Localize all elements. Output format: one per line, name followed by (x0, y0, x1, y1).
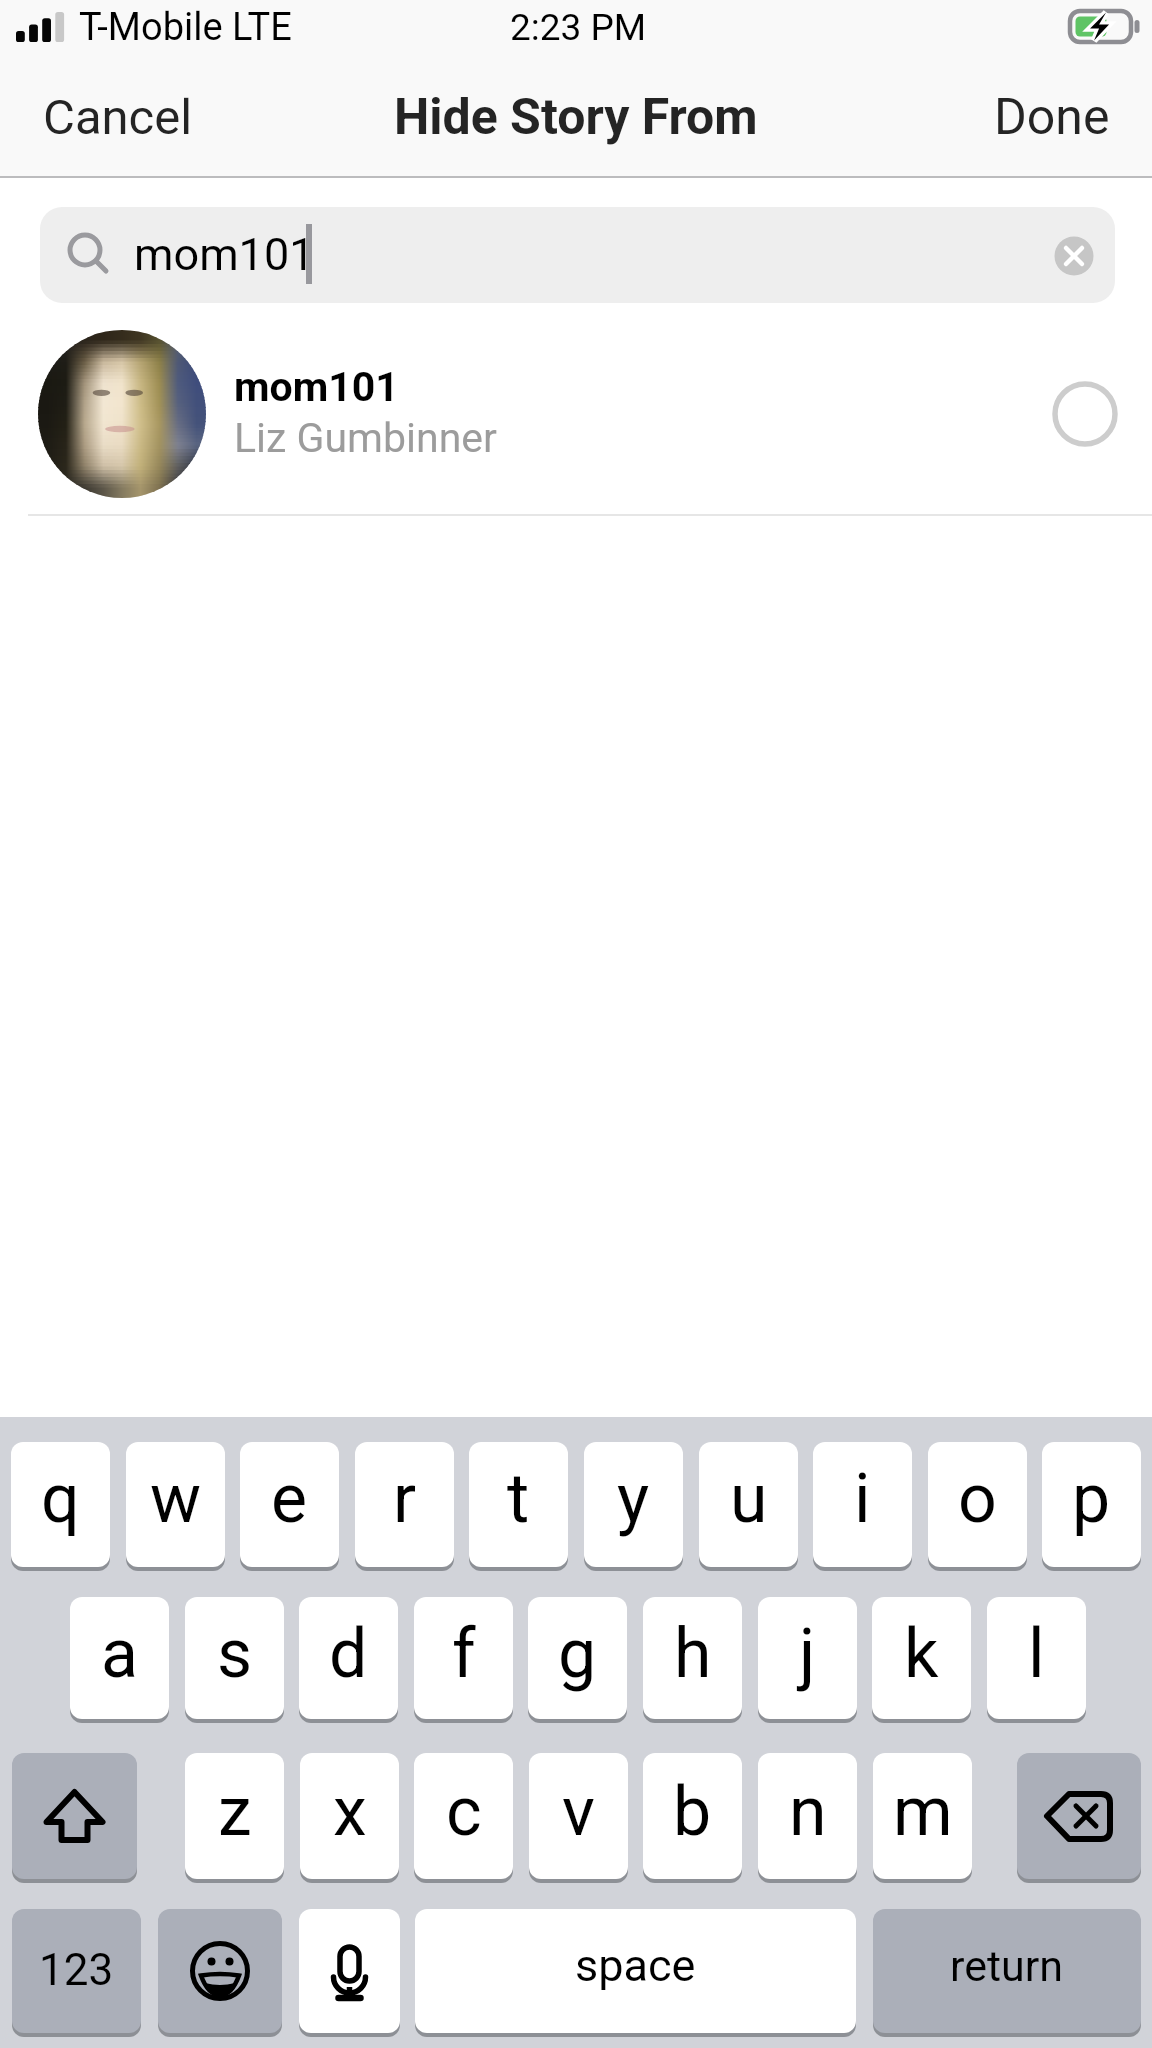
button[interactable]: u (699, 1442, 798, 1567)
button[interactable]: d (299, 1597, 398, 1719)
other: Battery charging (1070, 11, 1140, 45)
staticText: j (799, 1614, 816, 1694)
staticText: z (218, 1772, 252, 1852)
button[interactable]: Done (952, 62, 1152, 178)
staticText: l (1028, 1614, 1045, 1694)
staticText: a (101, 1614, 138, 1694)
button[interactable]: Select mom101 (1045, 374, 1125, 454)
staticText: Cancel (43, 89, 193, 146)
staticText: Hide Story From (394, 88, 758, 147)
button[interactable]: Delete (1017, 1753, 1141, 1879)
button[interactable]: o (928, 1442, 1027, 1567)
staticText: Done (994, 88, 1110, 147)
staticText: Liz Gumbinner (234, 414, 497, 462)
staticText: n (789, 1772, 827, 1852)
staticText: o (958, 1459, 997, 1539)
button[interactable]: n (758, 1753, 857, 1879)
button[interactable]: q (11, 1442, 110, 1567)
staticText: return (950, 1941, 1064, 1991)
staticText: g (558, 1614, 597, 1694)
staticText: t (507, 1459, 530, 1539)
staticText: i (854, 1459, 871, 1539)
button[interactable]: Dictation (299, 1909, 400, 2033)
button[interactable]: mom101 (0, 330, 1152, 514)
staticText: y (617, 1459, 650, 1539)
button[interactable]: r (355, 1442, 454, 1567)
staticText: x (333, 1772, 367, 1852)
button[interactable]: x (300, 1753, 399, 1879)
staticText: c (446, 1772, 482, 1852)
staticText: mom101 (234, 363, 399, 411)
staticText: v (562, 1772, 595, 1852)
staticText: h (674, 1614, 712, 1694)
staticText: u (730, 1459, 768, 1539)
button[interactable]: space (415, 1909, 856, 2033)
button[interactable]: h (643, 1597, 742, 1719)
button[interactable]: t (469, 1442, 568, 1567)
button[interactable]: a (70, 1597, 169, 1719)
staticText: 123 (39, 1944, 114, 1996)
button[interactable]: e (240, 1442, 339, 1567)
staticText: k (904, 1614, 939, 1694)
button[interactable]: mom101 (40, 207, 1115, 303)
button[interactable]: f (414, 1597, 513, 1719)
staticText: s (217, 1614, 253, 1694)
staticText: q (41, 1459, 80, 1539)
button[interactable]: i (813, 1442, 912, 1567)
button[interactable]: Clear search text (1052, 234, 1096, 278)
button[interactable]: g (528, 1597, 627, 1719)
button[interactable]: Emoji keyboard (158, 1909, 282, 2033)
staticText: e (271, 1459, 308, 1539)
staticText: r (393, 1459, 417, 1539)
button[interactable]: v (529, 1753, 628, 1879)
button[interactable]: s (185, 1597, 284, 1719)
button[interactable]: Cancel (0, 62, 236, 178)
staticText: mom101 (134, 228, 315, 281)
button[interactable]: p (1042, 1442, 1141, 1567)
button[interactable]: m (873, 1753, 972, 1879)
staticText: f (452, 1614, 476, 1694)
staticText: m (893, 1772, 953, 1852)
button[interactable]: 123 (12, 1909, 141, 2033)
staticText: T-Mobile LTE (79, 5, 292, 50)
staticText: b (673, 1772, 712, 1852)
staticText: w (150, 1459, 202, 1539)
button[interactable]: Shift (12, 1753, 137, 1879)
button[interactable]: l (987, 1597, 1086, 1719)
staticText: space (575, 1939, 696, 1992)
button[interactable]: return (873, 1909, 1141, 2033)
button[interactable]: b (643, 1753, 742, 1879)
staticText: d (329, 1614, 368, 1694)
button[interactable]: y (584, 1442, 683, 1567)
staticText: 2:23 PM (510, 6, 647, 49)
button[interactable]: j (758, 1597, 857, 1719)
staticText: p (1072, 1459, 1111, 1539)
button[interactable]: k (872, 1597, 971, 1719)
button[interactable]: w (126, 1442, 225, 1567)
button[interactable]: c (414, 1753, 513, 1879)
button[interactable]: z (185, 1753, 284, 1879)
